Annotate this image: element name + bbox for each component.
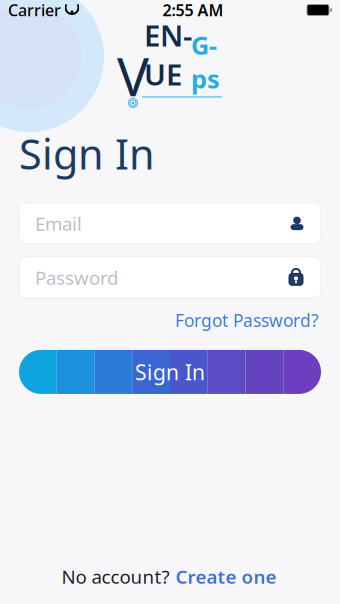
staticText: Create one	[175, 564, 276, 589]
staticText: V	[117, 40, 149, 111]
button[interactable]: Sign In	[19, 350, 321, 394]
staticText: Carrier	[8, 0, 61, 21]
button[interactable]: Forgot Password?	[173, 305, 321, 336]
button[interactable]: Create one	[173, 561, 278, 592]
staticText: Email	[35, 211, 82, 236]
staticText: Password	[35, 265, 118, 290]
staticText: Sign In	[135, 358, 205, 386]
staticText: Forgot Password?	[175, 309, 319, 332]
staticText: No account?	[61, 564, 169, 589]
staticText: Gps	[191, 28, 220, 95]
staticText: Sign In	[19, 126, 155, 181]
staticText: ENUE	[144, 16, 192, 93]
staticText: 2:55 AM	[162, 0, 223, 21]
